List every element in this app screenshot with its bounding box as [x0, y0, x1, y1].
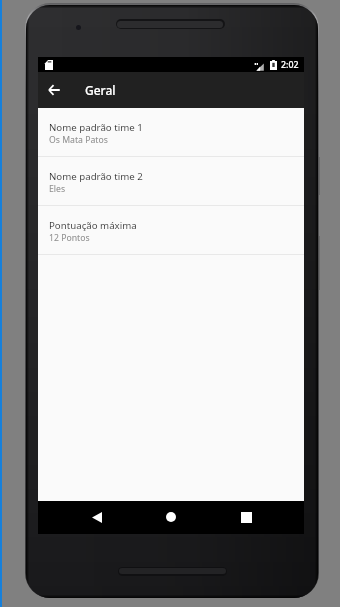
staticText: Eles [49, 183, 66, 195]
staticText: Geral [85, 82, 116, 98]
button[interactable]: Back [43, 79, 65, 101]
button[interactable]: Recent apps [231, 502, 261, 532]
button[interactable]: Pontuação máxima [38, 206, 304, 254]
staticText: Nome padrão time 2 [49, 170, 143, 183]
button[interactable]: Back [82, 502, 112, 532]
button[interactable]: Nome padrão time 1 [38, 108, 304, 156]
staticText: Nome padrão time 1 [49, 121, 143, 134]
button[interactable]: Nome padrão time 2 [38, 157, 304, 205]
staticText: 2:02 [281, 59, 299, 71]
staticText: Pontuação máxima [49, 219, 137, 232]
staticText: 12 Pontos [49, 232, 90, 244]
button[interactable]: Home [156, 502, 186, 532]
staticText: Os Mata Patos [49, 134, 108, 146]
